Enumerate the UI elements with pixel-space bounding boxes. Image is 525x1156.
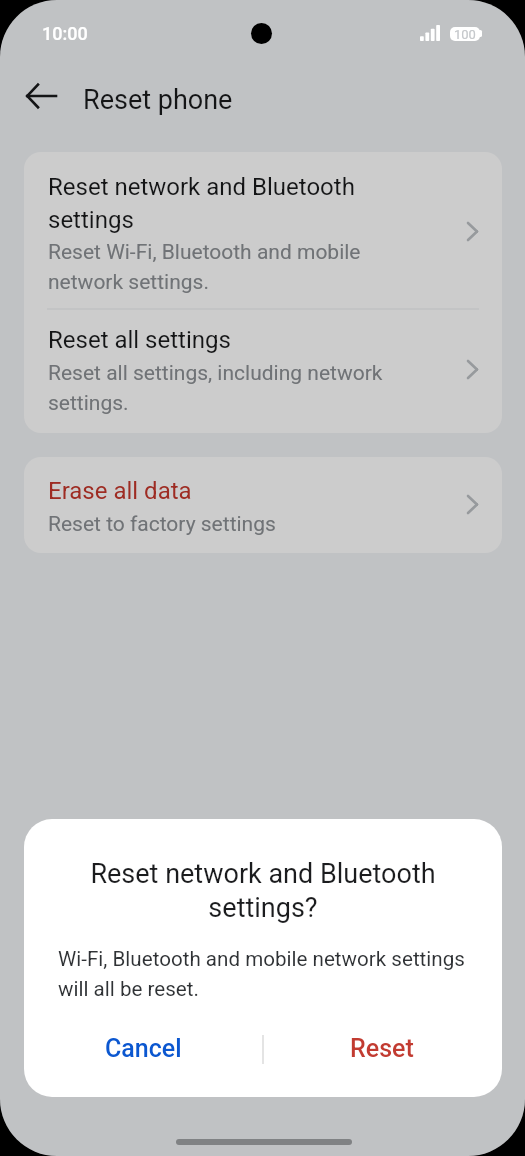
staticText: Reset phone (83, 84, 233, 116)
staticText: Reset network and Bluetooth settings (48, 173, 368, 234)
staticText: Reset Wi-Fi, Bluetooth and mobile networ… (48, 240, 368, 294)
staticText: Reset to factory settings (48, 512, 276, 537)
button[interactable]: Reset all settings (24, 310, 502, 433)
staticText: Cancel (105, 1034, 182, 1063)
staticText: Reset network and Bluetooth settings? (59, 858, 467, 924)
staticText: Wi-Fi, Bluetooth and mobile network sett… (58, 947, 472, 1001)
staticText: 100 (454, 27, 476, 41)
staticText: Reset (350, 1034, 414, 1063)
staticText: Erase all data (48, 477, 192, 505)
staticText: Reset all settings (48, 326, 388, 354)
button[interactable]: Cancel (27, 1019, 259, 1077)
staticText: 10:00 (42, 23, 88, 44)
button[interactable]: Back (12, 72, 70, 120)
button[interactable]: Reset network and Bluetooth settings (24, 152, 502, 308)
button[interactable]: Erase all data (24, 457, 502, 553)
button[interactable]: Reset (266, 1019, 498, 1077)
staticText: Reset all settings, including network se… (48, 361, 388, 415)
